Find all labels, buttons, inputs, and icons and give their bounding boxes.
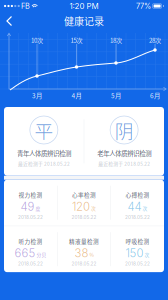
staticText: 6月 [150, 91, 160, 100]
button[interactable]: 心率检测 [57, 180, 110, 226]
staticText: % [89, 251, 93, 258]
staticText: 15次 [70, 36, 82, 44]
staticText: 精液量检测 [69, 237, 99, 245]
staticText: 青年人体质辨识检测 [17, 148, 71, 158]
button[interactable]: 呼吸检测 [111, 226, 164, 272]
staticText: 38 [75, 246, 89, 260]
staticText: 老年人体质辨识检测 [97, 148, 151, 158]
staticText: 次 [91, 205, 96, 212]
staticText: 77% [136, 2, 151, 10]
button[interactable]: 阴 [84, 107, 164, 176]
staticText: 心搏检测 [125, 191, 149, 199]
staticText: 次 [144, 251, 149, 258]
staticText: 2018.05.22 [71, 261, 96, 267]
staticText: 665 [15, 246, 36, 260]
button[interactable]: 平 [4, 107, 84, 176]
staticText: 18次 [110, 36, 122, 44]
staticText: 呼吸检测 [125, 237, 149, 245]
staticText: 平 [34, 116, 53, 143]
staticText: 心率检测 [72, 191, 96, 199]
staticText: 2018.05.22 [125, 214, 150, 220]
staticText: 4月 [71, 91, 81, 100]
staticText: 视力检测 [18, 191, 42, 199]
staticText: 28次 [149, 36, 161, 44]
staticText: 44 [128, 200, 142, 213]
button[interactable]: 视力检测 [4, 180, 57, 226]
staticText: 最近检测于 2018.05.22 [18, 160, 70, 167]
staticText: 120 [72, 200, 90, 213]
button[interactable]: 听力检测 [4, 226, 57, 272]
staticText: 分贝 [36, 251, 46, 258]
staticText: 150 [126, 246, 144, 260]
staticText: 5月 [111, 91, 121, 100]
staticText: 健康记录 [64, 14, 104, 28]
staticText: 度 [35, 205, 40, 212]
staticText: FB [21, 2, 30, 10]
staticText: 10次 [31, 36, 43, 44]
staticText: 阴 [115, 116, 134, 143]
staticText: 最近检测于 2018.05.22 [98, 160, 150, 167]
button[interactable]: 心搏检测 [111, 180, 164, 226]
button[interactable]: Back [3, 14, 17, 28]
staticText: 3月 [32, 91, 42, 100]
staticText: 次 [142, 205, 147, 212]
staticText: 听力检测 [18, 237, 42, 245]
button[interactable]: 精液量检测 [57, 226, 110, 272]
staticText: 2018.05.22 [71, 214, 96, 220]
staticText: 1:20 PM [69, 1, 98, 11]
staticText: 49 [21, 200, 35, 213]
staticText: 2018.05.22 [18, 261, 43, 267]
staticText: 2018.05.22 [18, 214, 43, 220]
staticText: 2018.05.22 [125, 261, 150, 267]
